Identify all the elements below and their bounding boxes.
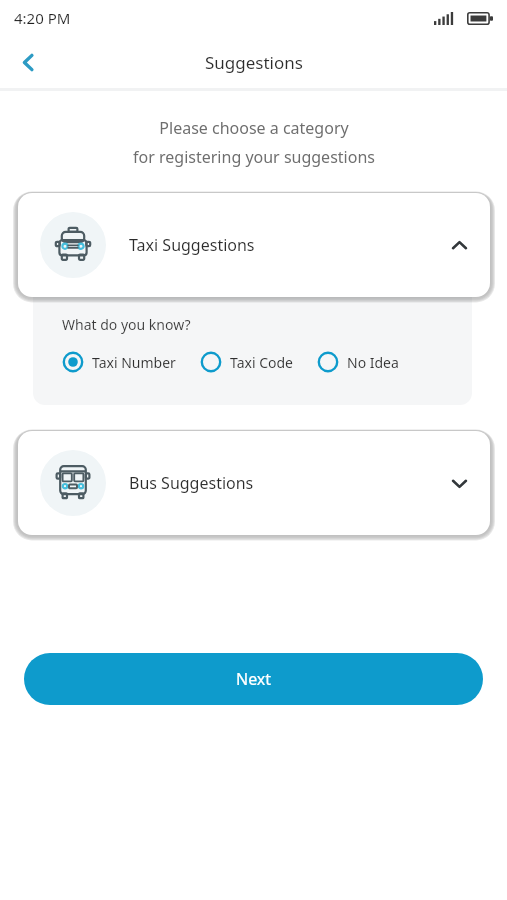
button[interactable]: Taxi Number <box>62 351 176 373</box>
staticText: No Idea <box>347 353 399 372</box>
button[interactable]: Taxi Suggestions <box>18 193 490 297</box>
staticText: Next <box>236 668 272 690</box>
staticText: What do you know? <box>62 315 191 334</box>
staticText: Taxi Number <box>92 353 176 372</box>
staticText: for registering your suggestions <box>133 146 375 168</box>
staticText: Taxi Suggestions <box>129 234 255 256</box>
staticText: 4:20 PM <box>14 8 71 28</box>
button[interactable]: No Idea <box>317 351 399 373</box>
button[interactable]: Taxi Code <box>200 351 293 373</box>
staticText: Bus Suggestions <box>129 472 254 494</box>
button[interactable]: Bus Suggestions <box>18 431 490 535</box>
staticText: Suggestions <box>205 51 303 74</box>
staticText: Please choose a category <box>159 117 349 139</box>
staticText: Taxi Code <box>230 353 293 372</box>
button[interactable]: Next <box>24 653 483 705</box>
button[interactable]: Back <box>6 40 50 84</box>
